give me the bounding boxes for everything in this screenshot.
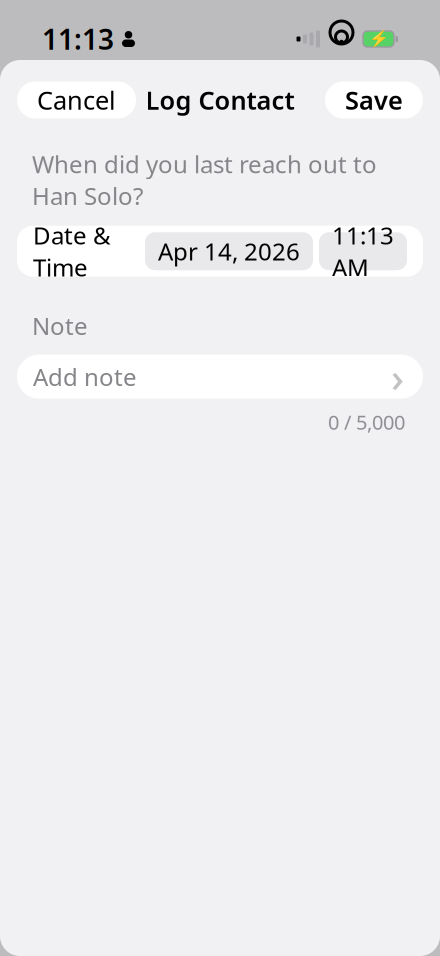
staticText: Log Contact (145, 83, 294, 117)
staticText: › (391, 350, 404, 403)
button[interactable]: 11:13 AM (319, 232, 407, 270)
button[interactable]: Save (325, 81, 423, 118)
staticText: Note (32, 310, 88, 342)
staticText: Save (345, 83, 403, 117)
staticText: Cancel (37, 83, 116, 117)
staticText: 11:13 (42, 20, 114, 58)
staticText: Apr 14, 2026 (158, 235, 300, 267)
staticText: Date & Time (33, 219, 111, 283)
button[interactable]: Apr 14, 2026 (145, 232, 313, 270)
button[interactable]: Add note (17, 355, 423, 399)
staticText: Add note (33, 361, 137, 393)
staticText: ⚡ (368, 30, 388, 48)
staticText: When did you last reach out to Han Solo? (32, 148, 377, 212)
staticText: 0 / 5,000 (328, 409, 405, 435)
staticText: 11:13 AM (332, 219, 394, 283)
button[interactable]: Cancel (17, 81, 136, 118)
